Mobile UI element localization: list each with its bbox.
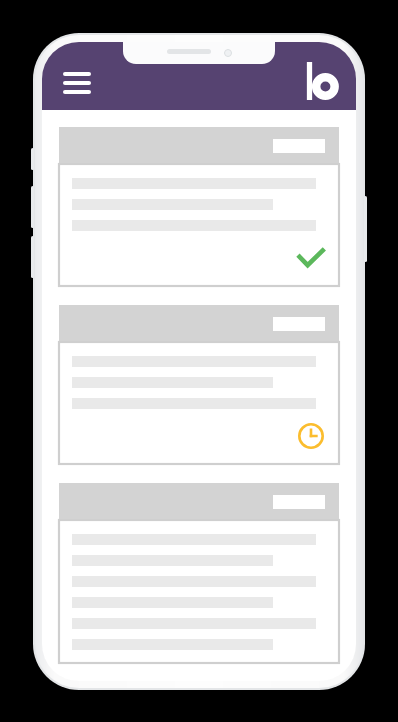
button[interactable]: Card action: [59, 483, 339, 663]
button[interactable]: Pending: [296, 421, 326, 451]
button[interactable]: Card action: [59, 305, 339, 464]
button[interactable]: App logo: [299, 58, 345, 104]
button[interactable]: Open navigation menu: [55, 61, 99, 105]
button[interactable]: Card action: [59, 127, 339, 286]
button[interactable]: Completed: [296, 243, 326, 273]
